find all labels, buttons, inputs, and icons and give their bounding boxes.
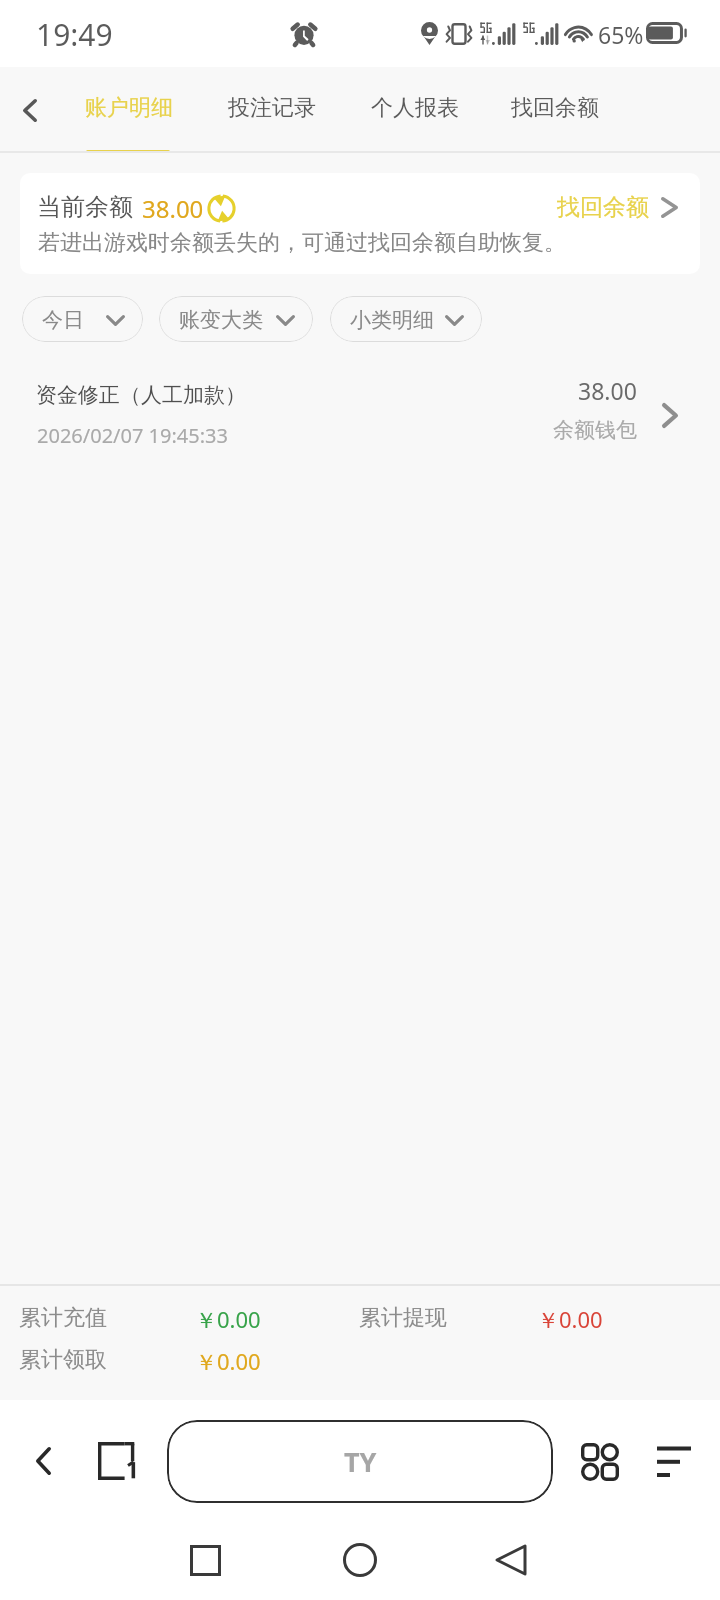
button[interactable]: Back	[0, 67, 68, 153]
staticText: 资金修正（人工加款）	[36, 382, 246, 408]
button[interactable]: Back	[461, 1520, 561, 1600]
button[interactable]: Apps	[562, 1400, 638, 1520]
button[interactable]: 今日	[22, 296, 143, 342]
button[interactable]: 个人报表	[371, 67, 459, 153]
button[interactable]: Back	[4, 1400, 80, 1520]
button[interactable]: 找回余额	[511, 67, 599, 153]
staticText: 38.00	[578, 375, 637, 406]
staticText: 小类明细	[350, 307, 434, 333]
staticText: 累计提现	[359, 1304, 447, 1332]
staticText: 65%	[598, 19, 644, 50]
staticText: 38.00	[142, 192, 204, 225]
staticText: 19:49	[36, 14, 113, 55]
staticText: 2026/02/07 19:45:33	[37, 422, 228, 449]
button[interactable]: 资金修正（人工加款）	[0, 360, 720, 456]
button[interactable]: 账户明细	[85, 67, 173, 153]
staticText: 账户明细	[85, 94, 173, 122]
button[interactable]: TY	[167, 1420, 553, 1503]
button[interactable]: 小类明细	[330, 296, 482, 342]
staticText: 找回余额	[511, 94, 599, 122]
staticText: 找回余额	[557, 193, 649, 222]
button[interactable]: Menu	[640, 1400, 710, 1520]
button[interactable]: Recents	[155, 1520, 255, 1600]
staticText: TY	[344, 1443, 377, 1480]
staticText: ￥0.00	[537, 1304, 603, 1334]
staticText: ￥0.00	[195, 1346, 261, 1376]
button[interactable]: 当前余额	[20, 173, 700, 274]
staticText: 若进出游戏时余额丢失的，可通过找回余额自助恢复。	[38, 229, 566, 257]
staticText: 累计领取	[19, 1346, 107, 1374]
staticText: 账变大类	[179, 307, 263, 333]
staticText: 当前余额	[37, 192, 133, 222]
staticText: 个人报表	[371, 94, 459, 122]
button[interactable]: Home	[310, 1520, 410, 1600]
staticText: 今日	[42, 307, 84, 333]
staticText: 累计充值	[19, 1304, 107, 1332]
button[interactable]: 投注记录	[228, 67, 316, 153]
staticText: 投注记录	[228, 94, 316, 122]
button[interactable]: Tabs	[84, 1400, 156, 1520]
staticText: 余额钱包	[553, 417, 637, 443]
button[interactable]: 账变大类	[159, 296, 313, 342]
staticText: ￥0.00	[195, 1304, 261, 1334]
